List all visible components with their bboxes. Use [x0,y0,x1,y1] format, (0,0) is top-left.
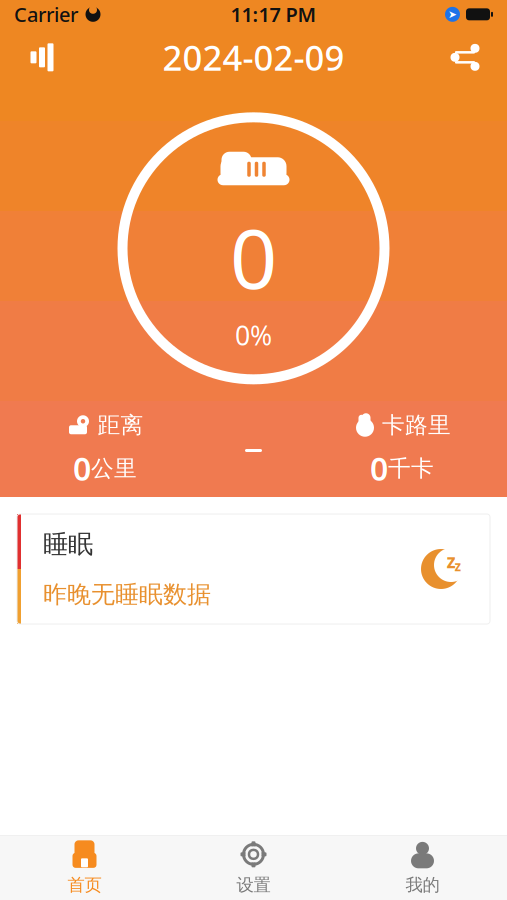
staticText: 0 [370,447,388,490]
staticText: 千卡 [388,454,434,482]
staticText: 卡路里 [382,411,451,439]
staticText: 设置 [236,874,270,896]
staticText: z [446,549,455,573]
button[interactable]: 我的 [338,836,507,900]
staticText: 0 [73,447,91,490]
staticText: 首页 [67,874,101,896]
button[interactable]: Statistics [16,35,68,79]
button[interactable]: 设置 [169,836,338,900]
staticText: 我的 [405,874,439,896]
staticText: z [454,557,461,575]
staticText: ➤ [448,8,457,20]
staticText: 2024-02-09 [162,34,344,80]
staticText: 昨晚无睡眠数据 [43,580,211,609]
button[interactable]: Share [439,35,491,79]
staticText: 11:17 PM [230,1,316,28]
staticText: 0 [230,202,277,311]
staticText: 距离 [97,411,143,439]
button[interactable]: 睡眠 [17,514,490,624]
staticText: Carrier [14,1,78,28]
staticText: 公里 [91,454,137,482]
staticText: 0% [235,317,272,353]
staticText: 睡眠 [43,529,93,560]
button[interactable]: 首页 [0,836,169,900]
